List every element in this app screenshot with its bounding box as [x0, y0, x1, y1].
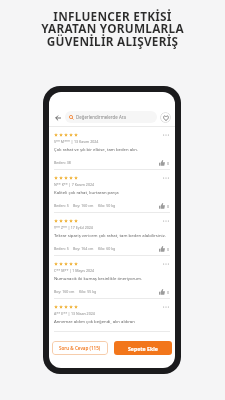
button[interactable]: 0: [159, 203, 170, 209]
staticText: Boy: 160 cm: [73, 203, 94, 208]
staticText: Y** Z** | 17 Eylül 2024: [54, 225, 93, 230]
button[interactable]: 0: [159, 160, 170, 166]
staticText: Tekrar sipariş vericem çok rahat, tam be…: [54, 232, 166, 238]
staticText: Boy: 160 cm: [54, 289, 75, 294]
staticText: 0: [167, 290, 170, 295]
staticText: A** E** | 13 Nisan 2024: [54, 311, 95, 316]
button[interactable]: More options: [162, 303, 170, 311]
button[interactable]: Sepete Ekle: [114, 341, 172, 355]
button[interactable]: More options: [162, 260, 170, 268]
staticText: Kilo: 60 kg: [98, 246, 116, 251]
button[interactable]: Back: [52, 112, 63, 123]
staticText: Beden: S: [54, 203, 69, 208]
button[interactable]: Değerlendirmelerde Ara: [65, 111, 157, 123]
button[interactable]: More options: [162, 131, 170, 139]
staticText: Çok rahat ve şık bir elbise, tam beden a…: [54, 146, 139, 152]
staticText: Beden: 38: [54, 160, 71, 165]
staticText: 0: [167, 204, 170, 209]
staticText: Annemze aldım çok beğendi, alın aldıran: [54, 318, 135, 324]
staticText: C** M** | 1 Mayıs 2024: [54, 268, 95, 273]
button[interactable]: 0: [159, 289, 170, 295]
staticText: 0: [167, 247, 170, 252]
staticText: Değerlendirmelerde Ara: [76, 114, 126, 120]
button[interactable]: More options: [162, 217, 170, 225]
staticText: Soru & Cevap (115): [59, 345, 101, 351]
staticText: INFLUENCER ETKİSİ YARATAN YORUMLARLA GÜV…: [41, 8, 184, 50]
staticText: 0: [167, 161, 170, 166]
staticText: S** M*** | 13 Kasım 2024: [54, 139, 99, 144]
button[interactable]: Add to favourites: [160, 112, 171, 123]
staticText: Kaliteli çok rahat, kurtaran parça: [54, 189, 119, 195]
staticText: Sepete Ekle: [128, 345, 158, 352]
button[interactable]: 0: [159, 246, 170, 252]
button[interactable]: Soru & Cevap (115): [52, 341, 108, 355]
staticText: Beden: S: [54, 246, 69, 251]
staticText: Kilo: 50 kg: [98, 203, 116, 208]
staticText: Kilo: 55 kg: [79, 289, 97, 294]
staticText: Boy: 164 cm: [73, 246, 94, 251]
button[interactable]: More options: [162, 174, 170, 182]
staticText: Numunacık iki kumaş kesinlikle öneriyoru…: [54, 275, 143, 281]
staticText: N** K** | 7 Kasım 2024: [54, 182, 95, 187]
